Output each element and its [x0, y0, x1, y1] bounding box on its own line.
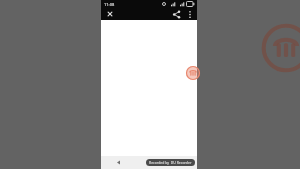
staticText: 11:08	[104, 2, 115, 7]
button[interactable]	[101, 20, 197, 156]
button[interactable]: Back	[114, 158, 123, 167]
button[interactable]: More options	[186, 9, 194, 20]
button[interactable]: Close	[105, 9, 115, 19]
button[interactable]: Share	[171, 9, 182, 20]
staticText: Recorded by DU Recorder	[149, 160, 192, 165]
